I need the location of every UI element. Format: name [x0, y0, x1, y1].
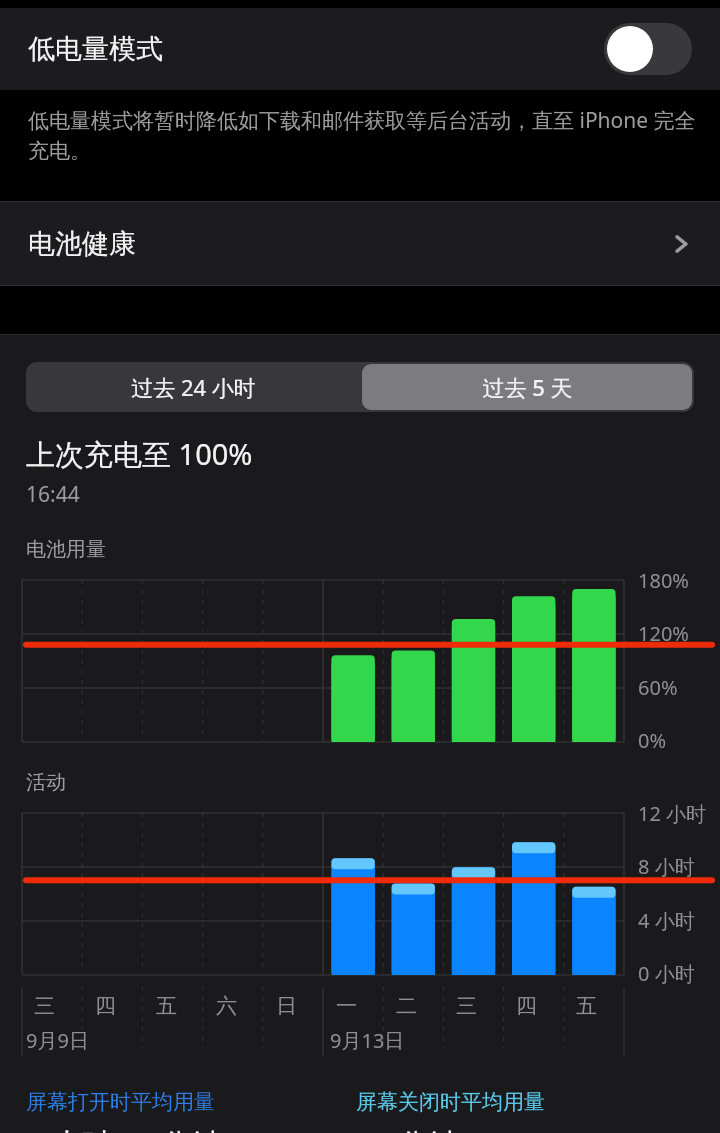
staticText: 0 小时 — [638, 960, 695, 987]
staticText: 四 — [95, 993, 116, 1019]
staticText: 0% — [638, 727, 667, 754]
staticText: 8 小时 — [638, 853, 695, 880]
staticText: 二 — [396, 993, 417, 1019]
staticText: 4 小时 — [638, 907, 695, 934]
button[interactable]: 过去 5 天 — [362, 364, 692, 410]
staticText: 五 — [576, 993, 597, 1019]
staticText: 电池健康 — [28, 227, 136, 261]
staticText: 电池用量 — [26, 537, 106, 562]
staticText: 60% — [638, 674, 678, 701]
staticText: 活动 — [26, 770, 66, 795]
staticText: 过去 5 天 — [482, 372, 573, 402]
staticText: 过去 24 小时 — [131, 372, 256, 402]
staticText: 四 — [516, 993, 537, 1019]
staticText: 上次充电至 100% — [26, 434, 253, 474]
staticText: 120% — [638, 620, 689, 647]
staticText: 低电量模式 — [28, 32, 163, 66]
button[interactable]: 低电量模式开关 — [604, 23, 692, 75]
staticText: 12 小时 — [638, 800, 707, 827]
staticText: 10 分钟 — [356, 1123, 459, 1133]
staticText: 9月13日 — [330, 1027, 405, 1054]
staticText: 三 — [456, 993, 477, 1019]
staticText: 三 — [34, 993, 55, 1019]
staticText: 4 小时 24 分钟 — [26, 1123, 221, 1133]
staticText: 六 — [216, 993, 237, 1019]
staticText: 一 — [336, 993, 357, 1019]
staticText: 16:44 — [26, 480, 80, 509]
staticText: 9月9日 — [26, 1027, 89, 1054]
staticText: 180% — [638, 567, 689, 594]
staticText: 屏幕打开时平均用量 — [26, 1089, 215, 1115]
button[interactable]: 低电量模式 — [0, 8, 720, 90]
staticText: 低电量模式将暂时降低如下载和邮件获取等后台活动，直至 iPhone 完全充电。 — [28, 106, 698, 165]
other: 电池健康 — [670, 233, 692, 255]
staticText: 日 — [276, 993, 297, 1019]
button[interactable]: 过去 24 小时 — [28, 364, 358, 410]
button[interactable]: 电池健康 — [0, 202, 720, 285]
staticText: 五 — [156, 993, 177, 1019]
staticText: 屏幕关闭时平均用量 — [356, 1089, 545, 1115]
